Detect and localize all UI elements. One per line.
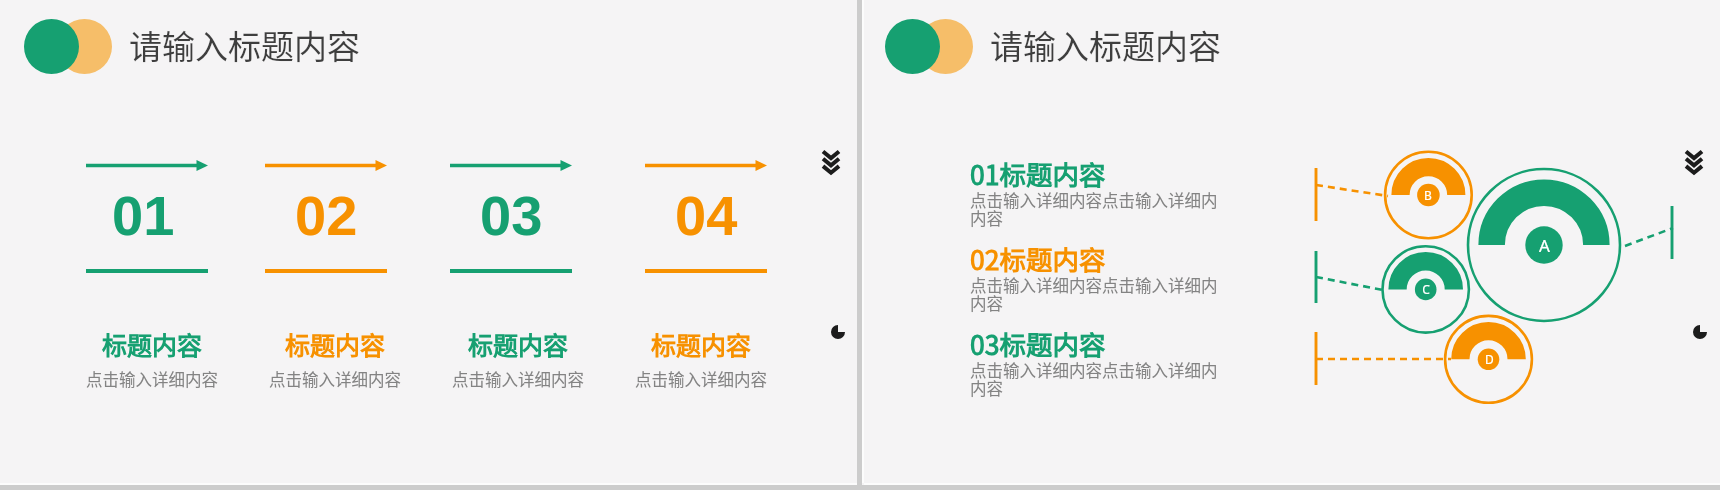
staticText: 请输入标题内容: [129, 21, 360, 69]
button[interactable]: 标题内容: [610, 326, 792, 390]
button[interactable]: 02: [235, 150, 417, 285]
button[interactable]: Scroll down: [1684, 150, 1704, 178]
staticText: 内容: [970, 291, 1003, 315]
staticText: 内容: [970, 376, 1003, 400]
staticText: B: [1424, 187, 1432, 203]
staticText: 点击输入详细内容点击输入详细内: [970, 188, 1218, 212]
button[interactable]: 01标题内容: [970, 152, 1220, 222]
staticText: 02标题内容: [970, 239, 1106, 277]
staticText: 标题内容: [244, 326, 426, 362]
staticText: D: [1485, 351, 1494, 367]
staticText: 点击输入详细内容: [427, 367, 609, 391]
button[interactable]: 03标题内容: [970, 322, 1220, 392]
button[interactable]: Logo: [24, 10, 114, 84]
staticText: 01: [112, 184, 175, 244]
staticText: 02: [295, 184, 358, 244]
staticText: 点击输入详细内容点击输入详细内: [970, 273, 1218, 297]
staticText: 03标题内容: [970, 324, 1106, 362]
staticText: 点击输入详细内容: [244, 367, 426, 391]
button[interactable]: 01: [56, 150, 238, 285]
button[interactable]: 标题内容: [61, 326, 243, 390]
staticText: 内容: [970, 206, 1003, 230]
staticText: A: [1539, 234, 1550, 257]
button[interactable]: Chart: [1693, 325, 1707, 339]
staticText: 01标题内容: [970, 154, 1106, 192]
staticText: 标题内容: [610, 326, 792, 362]
button[interactable]: 04: [615, 150, 797, 285]
button[interactable]: 02标题内容: [970, 237, 1220, 307]
staticText: 点击输入详细内容: [61, 367, 243, 391]
button[interactable]: Chart: [831, 325, 845, 339]
button[interactable]: 标题内容: [427, 326, 609, 390]
staticText: 标题内容: [61, 326, 243, 362]
staticText: 04: [675, 184, 738, 244]
staticText: 请输入标题内容: [990, 21, 1221, 69]
staticText: 03: [480, 184, 543, 244]
button[interactable]: 标题内容: [244, 326, 426, 390]
button[interactable]: 03: [420, 150, 602, 285]
staticText: 标题内容: [427, 326, 609, 362]
staticText: 点击输入详细内容: [610, 367, 792, 391]
button[interactable]: Scroll down: [821, 150, 841, 178]
staticText: 点击输入详细内容点击输入详细内: [970, 358, 1218, 382]
staticText: C: [1422, 281, 1430, 297]
button[interactable]: Logo: [885, 10, 975, 84]
